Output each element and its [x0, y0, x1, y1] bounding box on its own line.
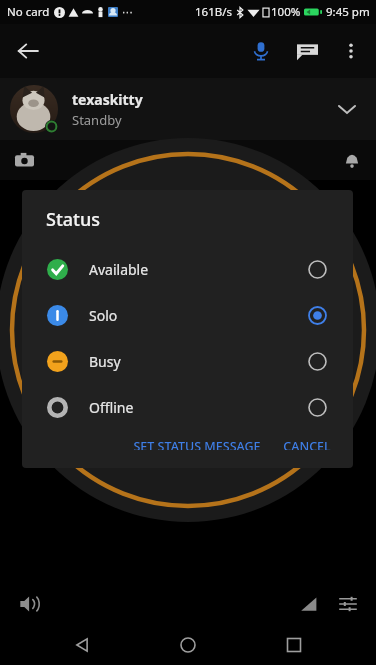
button[interactable]: Settings: [328, 584, 368, 624]
button[interactable]: Back: [6, 29, 50, 73]
staticText: No card: [7, 4, 50, 20]
button[interactable]: Camera: [6, 142, 42, 178]
staticText: Standby: [72, 111, 122, 129]
staticText: Available: [89, 260, 149, 279]
staticText: 161B/s: [195, 4, 232, 20]
staticText: SET STATUS MESSAGE: [133, 438, 261, 450]
button[interactable]: Messages: [284, 28, 330, 74]
button[interactable]: Available: [22, 246, 353, 292]
staticText: 9:45 pm: [326, 4, 370, 20]
button[interactable]: Home: [164, 625, 212, 665]
staticText: texaskitty: [72, 90, 143, 109]
button[interactable]: Recent apps: [270, 625, 318, 665]
button[interactable]: Volume: [10, 584, 50, 624]
staticText: Solo: [89, 306, 118, 325]
button[interactable]: Signal: [288, 584, 328, 624]
staticText: 100%: [271, 4, 301, 20]
staticText: ⋯: [122, 6, 133, 19]
staticText: Status: [46, 207, 101, 232]
button[interactable]: More options: [330, 30, 372, 72]
button[interactable]: CANCEL: [275, 430, 339, 458]
staticText: Busy: [89, 352, 121, 371]
button[interactable]: Expand: [324, 86, 370, 132]
button[interactable]: SET STATUS MESSAGE: [125, 430, 269, 458]
button[interactable]: Notifications: [334, 142, 370, 178]
button[interactable]: Voice call: [238, 28, 284, 74]
staticText: CANCEL: [283, 438, 331, 450]
button[interactable]: Solo: [22, 292, 353, 338]
button[interactable]: texaskitty: [0, 78, 376, 140]
staticText: Offline: [89, 398, 134, 417]
button[interactable]: Busy: [22, 338, 353, 384]
button[interactable]: Back: [58, 625, 106, 665]
button[interactable]: Offline: [22, 384, 353, 430]
